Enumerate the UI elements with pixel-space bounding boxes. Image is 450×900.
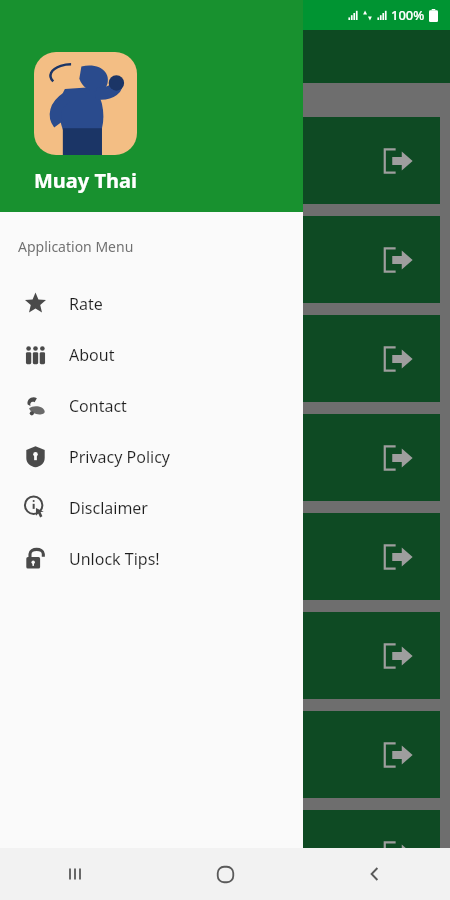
- button[interactable]: Unlock Tips!: [0, 533, 303, 584]
- button[interactable]: About: [0, 329, 303, 380]
- staticText: Conditioning: [26, 842, 136, 865]
- staticText: Rate: [69, 293, 103, 315]
- button[interactable]: Clinch Work: [10, 612, 440, 699]
- button[interactable]: Conditioning: [10, 810, 440, 897]
- button[interactable]: Roundhouse Kick: [10, 315, 440, 402]
- button[interactable]: Home: [150, 848, 300, 900]
- button[interactable]: Elbow Strikes: [10, 414, 440, 501]
- button[interactable]: Basic Stance: [10, 117, 440, 204]
- staticText: 100%: [391, 6, 425, 24]
- button[interactable]: Defence Movement: [10, 711, 440, 798]
- staticText: Basic Stance: [26, 149, 132, 172]
- button[interactable]: Jab & Cross: [10, 216, 440, 303]
- staticText: Muay Thai: [34, 167, 137, 194]
- staticText: Elbow Strikes: [26, 446, 140, 469]
- button[interactable]: Recent apps: [0, 848, 150, 900]
- staticText: Knee Strikes: [26, 545, 132, 568]
- staticText: Application Menu: [18, 237, 134, 256]
- staticText: About: [69, 344, 115, 366]
- button[interactable]: Disclaimer: [0, 482, 303, 533]
- button[interactable]: Back: [300, 848, 450, 900]
- staticText: Jab & Cross: [26, 248, 121, 271]
- staticText: Disclaimer: [69, 497, 148, 519]
- button[interactable]: Contact: [0, 380, 303, 431]
- staticText: Privacy Policy: [69, 446, 170, 468]
- staticText: Roundhouse Kick: [26, 347, 173, 370]
- staticText: Muay Thai Techniques: [56, 44, 258, 70]
- button[interactable]: Rate: [0, 278, 303, 329]
- staticText: Unlock Tips!: [69, 548, 160, 570]
- staticText: Contact: [69, 395, 127, 417]
- button[interactable]: Privacy Policy: [0, 431, 303, 482]
- button[interactable]: Knee Strikes: [10, 513, 440, 600]
